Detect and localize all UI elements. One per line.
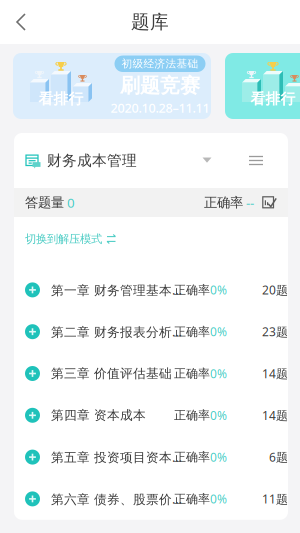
staticText: 初级经济法基础 — [121, 57, 198, 70]
staticText: 第二章 财务报表分析… — [51, 323, 182, 340]
button[interactable]: 第五章 投资项目资本… — [14, 436, 288, 478]
staticText: 正确率 — [204, 194, 243, 211]
staticText: 0% — [210, 491, 227, 507]
staticText: 6题 — [269, 449, 288, 465]
button[interactable]: 看排行 — [13, 53, 211, 119]
button[interactable]: 第二章 财务报表分析… — [14, 311, 288, 353]
staticText: 20题 — [262, 282, 288, 298]
button[interactable]: 第四章 资本成本 — [14, 394, 288, 436]
staticText: 财务成本管理 — [47, 151, 137, 170]
staticText: 刷题竞赛 — [120, 73, 200, 98]
staticText: 2020.10.28–11.11 — [110, 99, 209, 116]
staticText: 第一章 财务管理基本… — [51, 281, 182, 299]
staticText: 切换到解压模式 — [25, 232, 102, 246]
staticText: 正确率 — [174, 366, 210, 381]
button[interactable]: 切换科目 — [190, 133, 224, 188]
button[interactable]: 返回 — [0, 0, 42, 44]
staticText: 第六章 债券、股票价… — [51, 490, 182, 508]
button[interactable]: 第六章 债券、股票价… — [14, 478, 288, 520]
staticText: 正确率 — [174, 408, 210, 423]
staticText: 正确率 — [174, 491, 210, 506]
staticText: 0% — [210, 282, 227, 298]
staticText: 0% — [210, 449, 227, 465]
staticText: 正确率 — [174, 324, 210, 339]
staticText: 看排行 — [250, 89, 295, 108]
staticText: 正确率 — [174, 449, 210, 465]
button[interactable]: 更多 — [224, 133, 288, 188]
button[interactable]: 第三章 价值评估基础 — [14, 353, 288, 394]
staticText: 23题 — [262, 323, 288, 340]
staticText: 第五章 投资项目资本… — [51, 448, 182, 466]
staticText: 第三章 价值评估基础 — [51, 365, 172, 381]
button[interactable]: 做题报告 — [254, 196, 277, 209]
staticText: 题库 — [131, 10, 169, 34]
staticText: 0% — [210, 407, 227, 423]
button[interactable]: 财务成本管理 — [14, 133, 190, 188]
staticText: 0% — [210, 323, 227, 340]
button[interactable]: 切换到解压模式 — [14, 217, 116, 261]
staticText: 14题 — [262, 365, 288, 382]
staticText: 第四章 资本成本 — [51, 407, 146, 423]
staticText: 11题 — [262, 491, 288, 507]
button[interactable]: 看排行 — [225, 53, 300, 119]
staticText: -- — [243, 193, 254, 212]
staticText: 14题 — [262, 407, 288, 423]
staticText: 0% — [210, 365, 227, 382]
staticText: 看排行 — [38, 89, 83, 108]
staticText: 0 — [64, 193, 75, 212]
staticText: 正确率 — [174, 282, 210, 297]
button[interactable]: 第一章 财务管理基本… — [14, 269, 288, 311]
staticText: 答题量 — [25, 194, 64, 211]
